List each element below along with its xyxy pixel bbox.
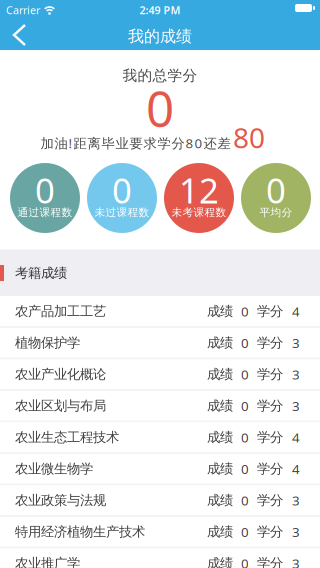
staticText: 成绩 [207, 366, 233, 382]
staticText: 0 [112, 167, 132, 213]
button[interactable]: 农产品加工工艺 [0, 296, 320, 328]
staticText: 0 [35, 167, 55, 213]
staticText: 0 [241, 397, 249, 415]
staticText: 2:49 PM [139, 3, 180, 17]
staticText: 0 [241, 365, 249, 383]
staticText: 农业微生物学 [15, 461, 93, 477]
staticText: 0 [241, 460, 249, 478]
staticText: 3 [292, 397, 300, 415]
staticText: 学分 [257, 461, 283, 477]
staticText: 考籍成绩 [15, 265, 67, 281]
staticText: 3 [292, 334, 300, 352]
staticText: 通过课程数 [17, 206, 72, 219]
staticText: 3 [292, 365, 300, 383]
staticText: 农业政策与法规 [15, 492, 106, 508]
staticText: 学分 [257, 492, 283, 508]
staticText: 12 [179, 167, 219, 213]
staticText: 学分 [257, 335, 283, 351]
button[interactable]: 农业区划与布局 [0, 391, 320, 422]
staticText: 学分 [257, 524, 283, 540]
staticText: 平均分 [259, 206, 292, 219]
staticText: 成绩 [207, 335, 233, 351]
staticText: 农业推广学 [15, 555, 80, 568]
staticText: 农业生态工程技术 [15, 429, 119, 445]
staticText: 成绩 [207, 398, 233, 414]
staticText: 成绩 [207, 555, 233, 568]
staticText: Carrier [6, 3, 40, 17]
staticText: 加油!距离毕业要求学分80还差 [40, 134, 230, 152]
staticText: 0 [241, 554, 249, 568]
staticText: 学分 [257, 429, 283, 445]
staticText: 成绩 [207, 524, 233, 540]
staticText: 学分 [257, 398, 283, 414]
staticText: 0 [241, 302, 249, 320]
staticText: 3 [292, 554, 300, 568]
button[interactable]: 农业政策与法规 [0, 485, 320, 517]
staticText: 0 [241, 491, 249, 509]
staticText: 0 [241, 428, 249, 446]
staticText: 成绩 [207, 303, 233, 319]
button[interactable]: 特用经济植物生产技术 [0, 517, 320, 548]
button[interactable]: 农业生态工程技术 [0, 422, 320, 454]
staticText: 农业产业化概论 [15, 366, 106, 382]
button[interactable]: 农业产业化概论 [0, 359, 320, 391]
staticText: 0 [241, 334, 249, 352]
staticText: 植物保护学 [15, 335, 80, 351]
staticText: 我的成绩 [128, 27, 192, 46]
staticText: 我的总学分 [122, 67, 197, 85]
staticText: 特用经济植物生产技术 [15, 524, 145, 540]
staticText: 0 [241, 523, 249, 541]
staticText: 0 [266, 167, 286, 213]
staticText: 未过课程数 [94, 206, 149, 219]
staticText: 学分 [257, 555, 283, 568]
button[interactable]: 农业微生物学 [0, 454, 320, 485]
staticText: 4 [292, 302, 300, 320]
staticText: 未考课程数 [171, 206, 226, 219]
staticText: 4 [292, 460, 300, 478]
staticText: 3 [292, 523, 300, 541]
staticText: 学分 [257, 366, 283, 382]
button[interactable]: 植物保护学 [0, 328, 320, 359]
button[interactable]: 农业推广学 [0, 548, 320, 568]
staticText: 农业区划与布局 [15, 398, 106, 414]
staticText: 农产品加工工艺 [15, 303, 106, 319]
staticText: 学分 [257, 303, 283, 319]
button[interactable]: Back [8, 20, 32, 50]
staticText: 0 [146, 75, 174, 140]
staticText: 80 [233, 119, 265, 156]
staticText: 3 [292, 491, 300, 509]
staticText: 成绩 [207, 429, 233, 445]
staticText: 4 [292, 428, 300, 446]
staticText: 成绩 [207, 492, 233, 508]
staticText: 成绩 [207, 461, 233, 477]
